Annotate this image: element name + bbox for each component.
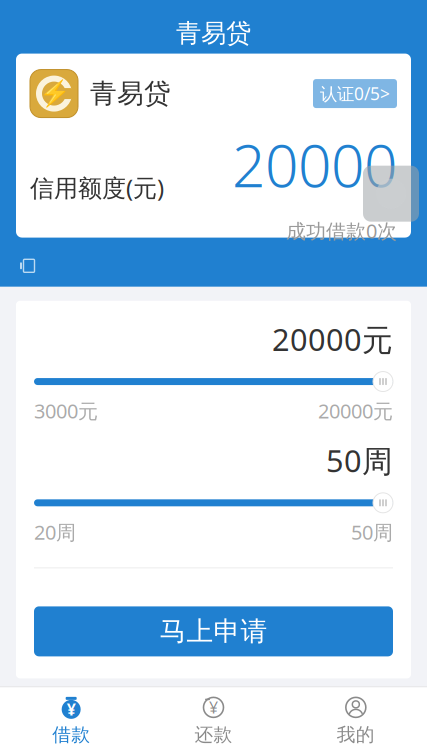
staticText: 认证0/5> [320, 82, 390, 105]
button[interactable]: ¥ [0, 687, 142, 752]
staticText: 还款 [194, 723, 232, 746]
staticText: 20000元 [272, 319, 393, 359]
staticText: 20000 [232, 126, 397, 203]
staticText: 青易贷 [176, 18, 251, 49]
staticText: 3000元 [34, 397, 98, 424]
button[interactable]: 马上申请 [34, 606, 393, 656]
staticText: 成功借款0次 [286, 217, 397, 244]
button[interactable]: ¥ [142, 687, 285, 752]
button[interactable]: 认证0/5> [313, 79, 397, 108]
staticText: 信用额度(元) [30, 172, 164, 203]
staticText: 我的 [337, 723, 375, 746]
staticText: 20000元 [318, 397, 393, 424]
staticText: 马上申请 [159, 615, 267, 648]
staticText: ¥ [67, 699, 76, 720]
staticText: 50周 [351, 519, 393, 545]
button[interactable]: 我的 [285, 687, 427, 752]
staticText: 50周 [326, 440, 393, 481]
staticText: ⚡ [39, 79, 71, 108]
staticText: 青易贷 [90, 77, 171, 110]
staticText: ¥ [209, 697, 218, 718]
staticText: 20周 [34, 519, 76, 545]
staticText: 借款 [52, 723, 90, 746]
button[interactable]: 公告 [18, 255, 40, 277]
